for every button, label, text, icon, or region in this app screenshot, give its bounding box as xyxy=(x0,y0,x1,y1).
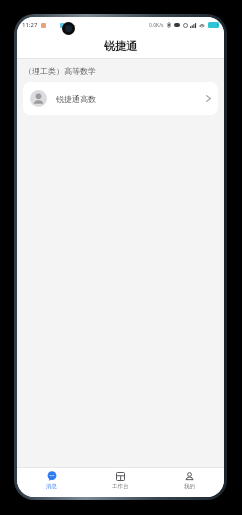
other: 我的 xyxy=(185,472,194,481)
staticText: 消息 xyxy=(46,483,57,490)
button[interactable]: 我的 xyxy=(155,468,224,493)
staticText: 11:27 xyxy=(22,21,38,29)
staticText: 锐捷通 xyxy=(104,39,137,53)
staticText: 工作台 xyxy=(112,483,129,490)
staticText: （理工类）高等数学 xyxy=(24,66,96,76)
staticText: 锐捷通高数 xyxy=(56,94,96,104)
staticText: 0.0K/s xyxy=(149,22,164,29)
button[interactable]: 消息 xyxy=(17,468,86,493)
other: 工作台 xyxy=(116,472,125,481)
staticText: 我的 xyxy=(184,483,195,490)
button[interactable]: 工作台 xyxy=(86,468,155,493)
other: 消息 xyxy=(47,471,57,481)
button[interactable]: 锐捷通高数 xyxy=(23,82,218,115)
